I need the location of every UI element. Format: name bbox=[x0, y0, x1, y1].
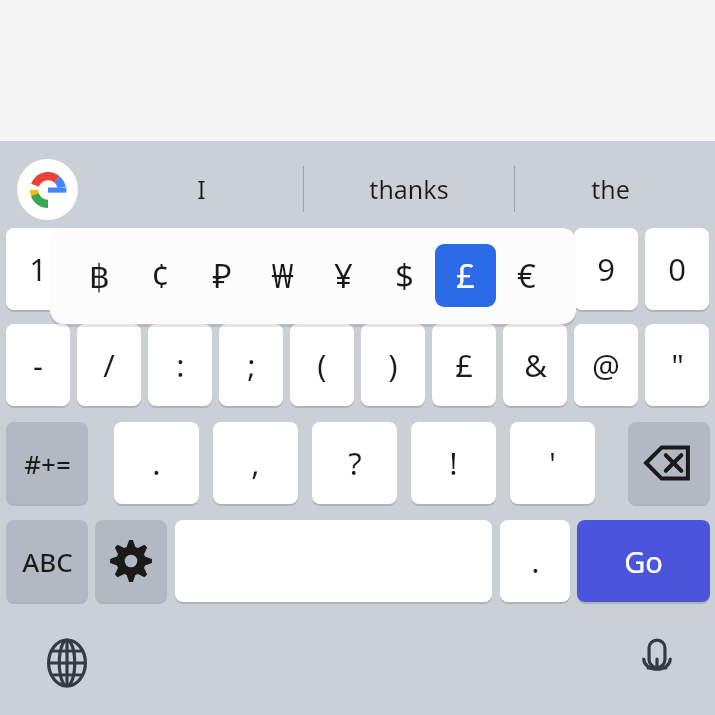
button[interactable]: - bbox=[6, 324, 70, 406]
staticText: ¢ bbox=[151, 253, 170, 298]
staticText: / bbox=[103, 344, 115, 386]
button[interactable]: ¥ bbox=[313, 244, 374, 307]
button[interactable]: 1 bbox=[6, 228, 70, 310]
staticText: " bbox=[671, 344, 684, 386]
staticText: 0 bbox=[668, 248, 686, 290]
button[interactable]: 7 bbox=[432, 228, 496, 310]
button[interactable]: Google bbox=[17, 159, 78, 220]
button[interactable]: & bbox=[503, 324, 567, 406]
staticText: Go bbox=[624, 542, 663, 581]
staticText: ฿ bbox=[89, 257, 110, 295]
button[interactable]: ₩ bbox=[252, 244, 313, 307]
staticText: € bbox=[517, 253, 536, 298]
button[interactable]: " bbox=[645, 324, 709, 406]
button[interactable]: Settings bbox=[95, 520, 167, 602]
button[interactable]: I bbox=[100, 159, 303, 219]
staticText: #+= bbox=[24, 446, 71, 481]
button[interactable]: . bbox=[114, 422, 199, 504]
staticText: . bbox=[531, 540, 540, 582]
staticText: , bbox=[251, 442, 260, 484]
button[interactable]: @ bbox=[574, 324, 638, 406]
button[interactable]: 8 bbox=[503, 228, 567, 310]
staticText: ABC bbox=[22, 544, 73, 579]
staticText: £ bbox=[455, 344, 473, 386]
staticText: 6 bbox=[384, 248, 402, 290]
button[interactable]: ₽ bbox=[191, 244, 252, 307]
staticText: 9 bbox=[597, 248, 615, 290]
staticText: ₩ bbox=[271, 253, 294, 298]
button[interactable]: 6 bbox=[361, 228, 425, 310]
button[interactable]: $ bbox=[374, 244, 435, 307]
button[interactable]: ' bbox=[510, 422, 595, 504]
button[interactable]: £ bbox=[435, 244, 496, 307]
staticText: . bbox=[152, 442, 161, 484]
staticText: ; bbox=[247, 344, 256, 386]
staticText: 7 bbox=[455, 248, 473, 290]
staticText: 1 bbox=[29, 248, 47, 290]
button[interactable]: ( bbox=[290, 324, 354, 406]
button[interactable]: 2 bbox=[77, 228, 141, 310]
staticText: £ bbox=[456, 253, 475, 298]
button[interactable]: 3 bbox=[148, 228, 212, 310]
button[interactable]: 0 bbox=[645, 228, 709, 310]
staticText: 2 bbox=[100, 248, 118, 290]
button[interactable]: / bbox=[77, 324, 141, 406]
staticText: 8 bbox=[526, 248, 544, 290]
button[interactable]: £ bbox=[432, 324, 496, 406]
staticText: ? bbox=[348, 442, 362, 484]
staticText: ¥ bbox=[334, 253, 353, 298]
button[interactable]: : bbox=[148, 324, 212, 406]
button[interactable]: #+= bbox=[6, 422, 88, 504]
staticText: thanks bbox=[369, 172, 449, 206]
button[interactable]: the bbox=[515, 159, 705, 219]
button[interactable]: Change language bbox=[36, 632, 98, 694]
button[interactable]: Go bbox=[577, 520, 710, 602]
staticText: ₽ bbox=[212, 253, 232, 298]
button[interactable]: thanks bbox=[304, 159, 514, 219]
staticText: : bbox=[176, 344, 185, 386]
button[interactable]: , bbox=[213, 422, 298, 504]
staticText: ) bbox=[388, 344, 398, 386]
button[interactable]: Voice input bbox=[626, 632, 688, 694]
staticText: - bbox=[33, 344, 43, 386]
button[interactable]: € bbox=[496, 244, 557, 307]
button[interactable]: 5 bbox=[290, 228, 354, 310]
button[interactable]: ฿ bbox=[69, 244, 130, 307]
staticText: & bbox=[524, 344, 547, 386]
staticText: ( bbox=[317, 344, 327, 386]
button[interactable]: ? bbox=[312, 422, 397, 504]
button[interactable]: 9 bbox=[574, 228, 638, 310]
staticText: @ bbox=[592, 344, 620, 386]
button[interactable]: ) bbox=[361, 324, 425, 406]
staticText: the bbox=[591, 172, 630, 206]
staticText: ' bbox=[549, 442, 556, 484]
button[interactable]: ; bbox=[219, 324, 283, 406]
staticText: $ bbox=[395, 253, 414, 298]
button[interactable]: . bbox=[500, 520, 570, 602]
staticText: I bbox=[197, 172, 206, 206]
staticText: ! bbox=[449, 442, 458, 484]
button[interactable]: ABC bbox=[6, 520, 88, 602]
button[interactable]: ! bbox=[411, 422, 496, 504]
button[interactable]: 4 bbox=[219, 228, 283, 310]
button[interactable]: ¢ bbox=[130, 244, 191, 307]
button[interactable]: Backspace bbox=[628, 422, 710, 504]
